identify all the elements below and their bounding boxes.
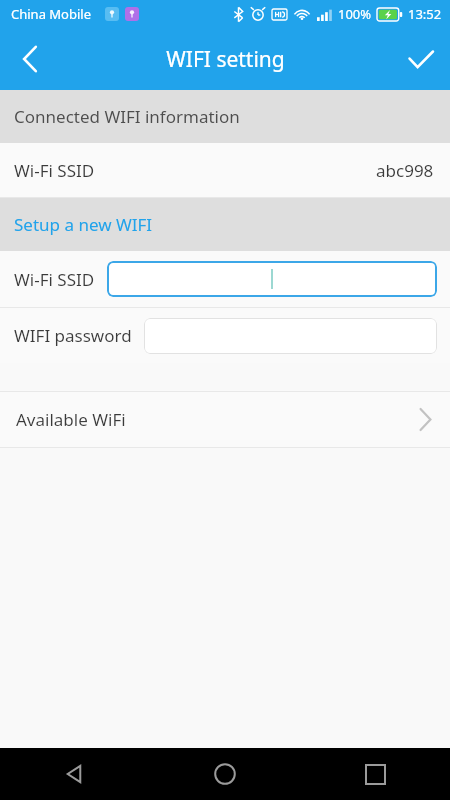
button[interactable]: Recents xyxy=(300,748,450,800)
staticText: China Mobile xyxy=(11,5,92,23)
button[interactable]: Wi-Fi SSID xyxy=(0,143,450,197)
staticText: Wi-Fi SSID xyxy=(14,159,95,182)
button[interactable]: Available WiFi xyxy=(0,392,450,447)
button[interactable]: Back xyxy=(0,28,58,90)
staticText: WIFI password xyxy=(14,324,132,347)
button[interactable]: Wi-Fi SSID xyxy=(107,261,437,297)
button[interactable]: Back xyxy=(0,748,150,800)
button[interactable]: WIFI password xyxy=(144,318,437,354)
button[interactable]: Confirm xyxy=(392,28,450,90)
staticText: Setup a new WIFI xyxy=(14,213,153,236)
staticText: Available WiFi xyxy=(16,408,126,431)
staticText: Connected WIFI information xyxy=(14,105,240,128)
staticText: 13:52 xyxy=(408,5,442,23)
staticText: WIFI setting xyxy=(166,45,285,74)
button[interactable]: Home xyxy=(150,748,300,800)
staticText: 100% xyxy=(338,5,372,23)
staticText: abc998 xyxy=(376,159,434,182)
staticText: Wi-Fi SSID xyxy=(14,268,95,291)
